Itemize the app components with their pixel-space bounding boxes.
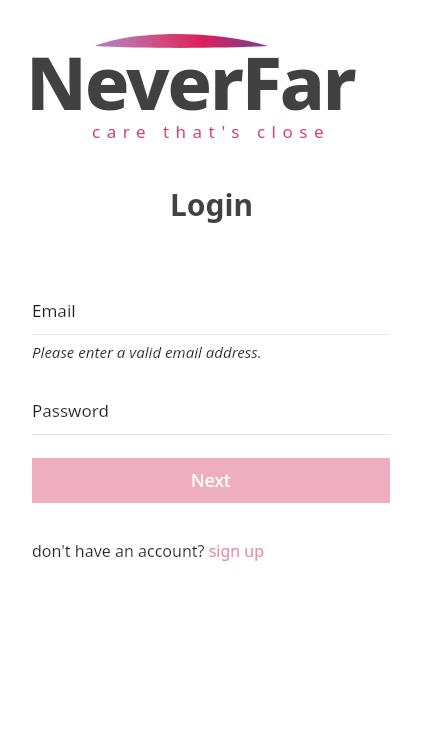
- staticText: Password: [32, 399, 109, 422]
- staticText: Login: [170, 184, 253, 225]
- staticText: don't have an account? sign up: [32, 540, 265, 562]
- button[interactable]: Email: [32, 299, 390, 322]
- staticText: Please enter a valid email address.: [32, 342, 262, 362]
- button[interactable]: don't have an account? sign up: [32, 540, 265, 562]
- button[interactable]: Password: [32, 399, 390, 422]
- staticText: NeverFar: [26, 31, 355, 132]
- staticText: care that's close: [92, 120, 330, 143]
- button[interactable]: Next: [32, 458, 390, 503]
- staticText: Next: [191, 468, 231, 493]
- staticText: Email: [32, 299, 76, 322]
